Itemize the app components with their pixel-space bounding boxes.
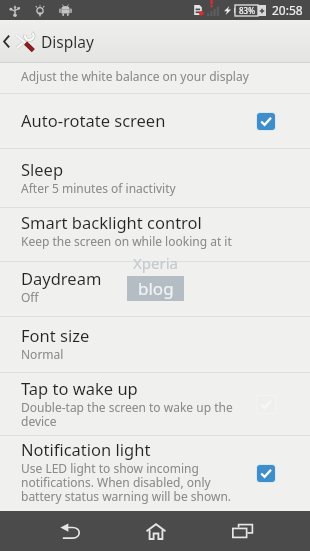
staticText: Normal (21, 346, 64, 362)
button[interactable]: Enabled (255, 463, 277, 484)
staticText: Use LED light to show incoming notificat… (21, 460, 232, 505)
staticText: Display (41, 31, 94, 52)
button[interactable]: Tap to wake up (0, 373, 310, 435)
button[interactable]: Enabled (255, 111, 277, 132)
staticText: 20:58 (272, 2, 303, 18)
button[interactable]: Auto-rotate screen (0, 94, 310, 148)
staticText: Tap to wake up (21, 377, 138, 399)
staticText: Adjust the white balance on your display (21, 68, 249, 84)
staticText: Font size (21, 324, 90, 346)
button[interactable]: Recent apps (196, 511, 310, 551)
button[interactable]: Smart backlight control (0, 208, 310, 261)
staticText: Smart backlight control (21, 211, 202, 233)
staticText: Xperia (133, 253, 178, 273)
staticText: After 5 minutes of inactivity (21, 180, 176, 196)
button[interactable]: Font size (0, 317, 310, 372)
staticText: Notification light (21, 438, 151, 460)
button[interactable]: Sleep (0, 149, 310, 207)
staticText: Keep the screen on while looking at it (21, 233, 232, 249)
button[interactable]: Home (110, 511, 196, 551)
staticText: blog (138, 277, 174, 300)
button[interactable]: Navigate up (0, 20, 35, 63)
staticText: Sleep (21, 158, 64, 180)
staticText: Double-tap the screen to wake up the dev… (21, 399, 233, 430)
button[interactable]: Daydream (0, 262, 310, 316)
staticText: 83% (239, 5, 255, 16)
staticText: Auto-rotate screen (21, 109, 166, 131)
staticText: Daydream (21, 267, 102, 289)
button[interactable]: Notification light (0, 436, 310, 511)
staticText: Off (21, 289, 39, 305)
button[interactable]: Back (0, 511, 110, 551)
